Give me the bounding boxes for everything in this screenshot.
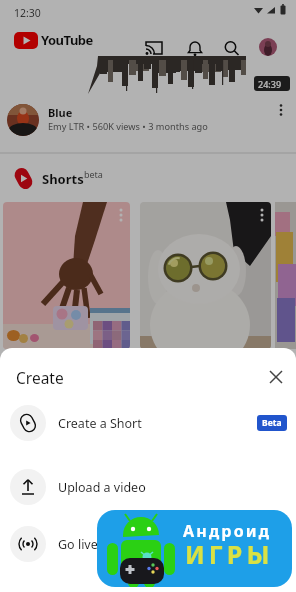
staticText: Create a Short bbox=[58, 415, 142, 432]
button[interactable] bbox=[145, 40, 163, 56]
staticText: beta bbox=[84, 168, 103, 180]
button[interactable] bbox=[259, 38, 277, 56]
button[interactable]: Create a Short bbox=[0, 399, 296, 447]
button[interactable] bbox=[140, 202, 271, 349]
staticText: Upload a video bbox=[58, 479, 146, 496]
staticText: 24:39 bbox=[258, 78, 282, 90]
button[interactable] bbox=[223, 40, 241, 56]
staticText: Create bbox=[16, 367, 64, 388]
staticText: Beta bbox=[262, 417, 282, 429]
button[interactable] bbox=[186, 40, 204, 56]
staticText: Emy LTR • 560K views • 3 months ago bbox=[48, 120, 208, 133]
staticText: 12:30 bbox=[14, 6, 41, 20]
button[interactable]: 24:39 bbox=[0, 94, 296, 146]
staticText: Shorts bbox=[42, 170, 84, 188]
button[interactable] bbox=[269, 370, 283, 384]
staticText: ИГРЫ bbox=[185, 537, 274, 571]
button[interactable] bbox=[274, 103, 288, 117]
button[interactable]: Upload a video bbox=[0, 463, 296, 511]
staticText: Андроид bbox=[183, 520, 272, 542]
button[interactable] bbox=[275, 202, 296, 349]
staticText: Go live bbox=[58, 536, 98, 553]
staticText: YouTube bbox=[41, 31, 93, 49]
staticText: Blue bbox=[48, 105, 73, 120]
button[interactable] bbox=[3, 202, 130, 349]
button[interactable]: Go live bbox=[0, 520, 296, 568]
